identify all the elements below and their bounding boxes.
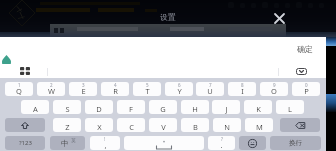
button[interactable]: Emoji bbox=[239, 136, 266, 150]
staticText: 2 bbox=[50, 82, 53, 88]
staticText: 英 bbox=[71, 138, 76, 144]
button[interactable]: 0 bbox=[292, 82, 320, 96]
staticText: R bbox=[113, 86, 118, 96]
button[interactable]: J bbox=[212, 100, 240, 114]
staticText: S bbox=[65, 104, 70, 114]
staticText: 1 bbox=[18, 82, 21, 88]
button[interactable]: Space bbox=[124, 136, 204, 150]
staticText: 设置 bbox=[160, 12, 176, 22]
button[interactable]: H bbox=[181, 100, 209, 114]
staticText: Y bbox=[177, 86, 182, 96]
button[interactable]: G bbox=[149, 100, 177, 114]
staticText: 9 bbox=[273, 82, 276, 88]
staticText: E bbox=[81, 86, 86, 96]
staticText: X bbox=[97, 122, 102, 132]
button[interactable]: 8 bbox=[228, 82, 256, 96]
staticText: A bbox=[33, 104, 38, 114]
button[interactable]: Z bbox=[53, 118, 81, 132]
staticText: T bbox=[145, 86, 150, 96]
button[interactable]: 确定 bbox=[290, 41, 320, 57]
staticText: , bbox=[104, 140, 107, 150]
staticText: ? bbox=[221, 136, 223, 142]
button[interactable]: 4 bbox=[101, 82, 129, 96]
staticText: 确定 bbox=[297, 44, 313, 54]
staticText: C bbox=[129, 122, 134, 132]
button[interactable]: Symbols bbox=[5, 136, 45, 150]
staticText: G bbox=[160, 104, 166, 114]
staticText: D bbox=[96, 104, 102, 114]
button[interactable]: ! bbox=[90, 136, 120, 150]
button[interactable]: D bbox=[85, 100, 113, 114]
button[interactable]: 3 bbox=[69, 82, 97, 96]
staticText: P bbox=[304, 86, 309, 96]
button[interactable]: Backspace bbox=[280, 118, 320, 132]
staticText: B bbox=[193, 122, 198, 132]
button[interactable]: 9 bbox=[260, 82, 288, 96]
staticText: Q bbox=[16, 86, 22, 96]
staticText: I bbox=[241, 86, 244, 96]
button[interactable]: Hide keyboard bbox=[291, 65, 311, 77]
button[interactable]: 7 bbox=[196, 82, 224, 96]
button[interactable]: Shift bbox=[5, 118, 45, 132]
button[interactable]: M bbox=[245, 118, 273, 132]
button[interactable]: X bbox=[85, 118, 113, 132]
button[interactable]: S bbox=[53, 100, 81, 114]
staticText: ! bbox=[104, 136, 106, 142]
button[interactable]: 2 bbox=[37, 82, 65, 96]
staticText: U bbox=[207, 86, 213, 96]
button[interactable]: B bbox=[181, 118, 209, 132]
staticText: 0 bbox=[305, 82, 308, 88]
button[interactable]: C bbox=[117, 118, 145, 132]
staticText: 3 bbox=[82, 82, 85, 88]
button[interactable]: N bbox=[213, 118, 241, 132]
button[interactable]: A bbox=[21, 100, 49, 114]
staticText: F bbox=[129, 104, 133, 114]
button[interactable]: K bbox=[244, 100, 272, 114]
button[interactable]: 6 bbox=[165, 82, 193, 96]
staticText: 4 bbox=[114, 82, 117, 88]
staticText: N bbox=[224, 122, 230, 132]
button[interactable]: 1 bbox=[5, 82, 33, 96]
staticText: 中 bbox=[61, 139, 69, 148]
button[interactable]: L bbox=[276, 100, 304, 114]
staticText: 换行 bbox=[289, 139, 302, 147]
button[interactable]: Language bbox=[50, 136, 85, 150]
staticText: . bbox=[220, 140, 223, 150]
button[interactable]: F bbox=[117, 100, 145, 114]
button[interactable]: V bbox=[149, 118, 177, 132]
staticText: 7 bbox=[209, 82, 212, 88]
staticText: O bbox=[271, 86, 277, 96]
staticText: K bbox=[256, 104, 261, 114]
staticText: W bbox=[48, 86, 55, 96]
staticText: L bbox=[288, 104, 292, 114]
staticText: Z bbox=[65, 122, 70, 132]
staticText: ?123 bbox=[19, 139, 32, 147]
button[interactable]: Enter bbox=[270, 136, 321, 150]
staticText: H bbox=[192, 104, 198, 114]
button[interactable]: ? bbox=[208, 136, 235, 150]
staticText: V bbox=[161, 122, 166, 132]
staticText: 8 bbox=[241, 82, 244, 88]
staticText: M bbox=[256, 122, 263, 132]
staticText: 5 bbox=[146, 82, 149, 88]
button[interactable]: 5 bbox=[133, 82, 161, 96]
staticText: 6 bbox=[178, 82, 181, 88]
button[interactable]: Keyboard menu bbox=[15, 64, 35, 78]
staticText: J bbox=[225, 104, 228, 114]
button[interactable]: Close bbox=[272, 11, 286, 25]
